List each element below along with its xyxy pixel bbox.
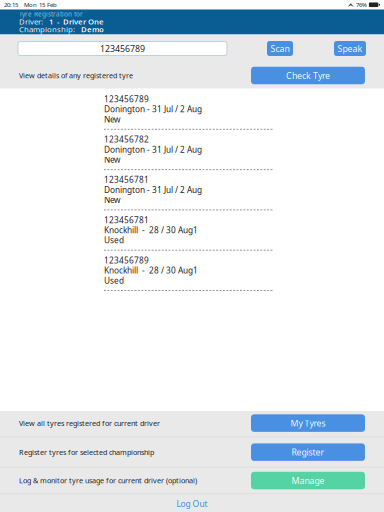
staticText: Register tyres for selected championship bbox=[19, 447, 154, 457]
button[interactable]: 123456789 bbox=[0, 94, 384, 134]
button[interactable]: Manage bbox=[251, 472, 365, 489]
staticText: Scan bbox=[270, 42, 289, 54]
staticText: New bbox=[104, 154, 120, 165]
staticText: Manage bbox=[291, 475, 324, 487]
staticText: 123456789 bbox=[100, 42, 145, 54]
staticText: New bbox=[104, 114, 120, 125]
staticText: Knockhill - 28 / 30 Aug1 bbox=[104, 224, 198, 236]
button[interactable]: Check Tyre bbox=[251, 67, 365, 84]
staticText: Register bbox=[291, 446, 324, 458]
staticText: Knockhill - 28 / 30 Aug1 bbox=[104, 265, 198, 276]
staticText: 123456789 bbox=[104, 255, 149, 266]
staticText: My Tyres bbox=[290, 417, 325, 429]
staticText: Log & monitor tyre usage for current dri… bbox=[19, 476, 197, 485]
staticText: Tyre Registration for bbox=[19, 10, 83, 18]
staticText: Donington - 31 Jul / 2 Aug bbox=[104, 103, 202, 115]
button[interactable]: 123456781 bbox=[0, 175, 384, 215]
staticText: Mon 15 Feb bbox=[18, 1, 57, 9]
button[interactable]: Log Out bbox=[0, 494, 384, 512]
staticText: 20:15 bbox=[4, 1, 18, 9]
button[interactable]: Register bbox=[251, 443, 365, 461]
staticText: Donington - 31 Jul / 2 Aug bbox=[104, 144, 202, 155]
staticText: Driver: 1 - Driver One bbox=[19, 16, 104, 27]
staticText: Log Out bbox=[176, 498, 207, 510]
button[interactable]: 123456781 bbox=[0, 215, 384, 255]
staticText: 123456789 bbox=[104, 93, 149, 105]
staticText: View all tyres registered for current dr… bbox=[19, 418, 160, 428]
staticText: New bbox=[104, 194, 120, 205]
staticText: View details of any registered tyre bbox=[19, 71, 133, 80]
button[interactable]: Scan bbox=[267, 41, 293, 56]
button[interactable]: Speak bbox=[334, 41, 366, 56]
staticText: 76% bbox=[356, 1, 367, 9]
staticText: Speak bbox=[337, 42, 362, 54]
staticText: 123456781 bbox=[104, 214, 149, 226]
staticText: 123456781 bbox=[104, 174, 149, 185]
staticText: Used bbox=[104, 234, 124, 246]
button[interactable]: 123456789 bbox=[0, 255, 384, 295]
staticText: Used bbox=[104, 275, 124, 286]
button[interactable]: 123456782 bbox=[0, 134, 384, 175]
staticText: Donington - 31 Jul / 2 Aug bbox=[104, 184, 202, 195]
staticText: 123456782 bbox=[104, 134, 149, 145]
staticText: Check Tyre bbox=[286, 69, 330, 81]
staticText: Championship: Demo bbox=[19, 24, 104, 34]
button[interactable]: My Tyres bbox=[251, 414, 365, 432]
